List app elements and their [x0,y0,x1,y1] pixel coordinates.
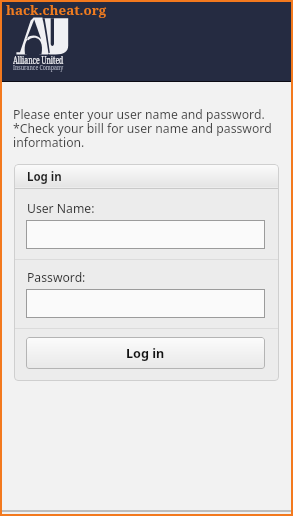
staticText: User Name: [27,200,95,217]
staticText: Log in [27,169,62,185]
staticText: Password: [27,269,86,286]
staticText: hack.cheat.org [6,1,107,19]
button[interactable] [26,220,265,249]
button[interactable]: Log in [26,337,265,369]
button[interactable] [26,289,265,318]
button[interactable]: Log in [14,164,279,187]
staticText: Alliance United [13,53,64,67]
staticText: Insurance Company [13,62,63,73]
staticText: Log in [126,345,165,362]
staticText: Please enter your user name and password… [13,106,272,150]
